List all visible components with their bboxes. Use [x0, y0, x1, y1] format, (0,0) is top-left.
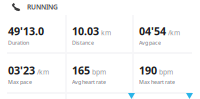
staticText: bpm: [159, 67, 173, 76]
staticText: Max pace: [8, 78, 32, 85]
staticText: 10.03: [72, 24, 99, 38]
staticText: Distance: [72, 39, 94, 46]
staticText: Duration: [8, 39, 29, 46]
staticText: /km: [168, 28, 180, 37]
staticText: 165: [72, 63, 90, 77]
staticText: km: [101, 28, 111, 37]
staticText: 190: [139, 63, 157, 77]
staticText: 03'23: [8, 63, 35, 77]
staticText: 49'13.0: [8, 24, 44, 38]
staticText: Max heart rate: [139, 78, 175, 85]
staticText: Avg heart rate: [72, 78, 106, 85]
staticText: 04'54: [139, 24, 166, 38]
staticText: Avg pace: [139, 39, 161, 46]
staticText: /km: [37, 67, 49, 76]
staticText: RUNNING: [27, 3, 58, 11]
staticText: bpm: [92, 67, 106, 76]
